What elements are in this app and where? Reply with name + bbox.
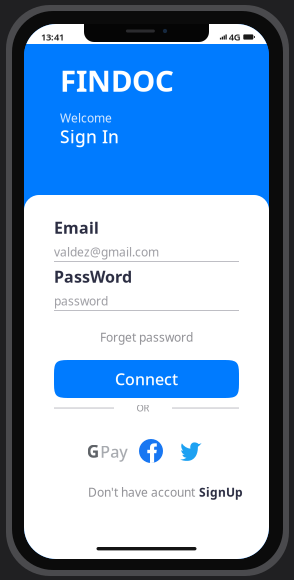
button[interactable]: Sign in with Google Pay xyxy=(90,438,124,464)
staticText: Email xyxy=(54,217,99,238)
staticText: FINDOC xyxy=(60,61,174,100)
button[interactable]: Connect xyxy=(54,360,239,398)
staticText: OR xyxy=(136,402,149,414)
staticText: SignUp xyxy=(199,484,243,500)
staticText: 4G xyxy=(229,31,241,43)
staticText: Sign In xyxy=(60,125,119,148)
staticText: Pay xyxy=(100,441,127,462)
staticText: G xyxy=(87,439,100,462)
staticText: PassWord xyxy=(54,266,132,287)
staticText: Don't have account xyxy=(88,484,195,500)
staticText: password xyxy=(54,293,108,309)
staticText: Connect xyxy=(115,368,178,390)
button[interactable]: Sign in with Twitter xyxy=(179,439,203,463)
staticText: Welcome xyxy=(60,110,112,126)
button[interactable]: Forget password xyxy=(54,325,239,349)
button[interactable]: Don't have account xyxy=(54,483,243,501)
staticText: 13:41 xyxy=(41,31,64,43)
staticText: Forget password xyxy=(100,329,193,345)
staticText: valdez@gmail.com xyxy=(54,244,159,260)
button[interactable]: Sign in with Facebook xyxy=(139,439,163,463)
